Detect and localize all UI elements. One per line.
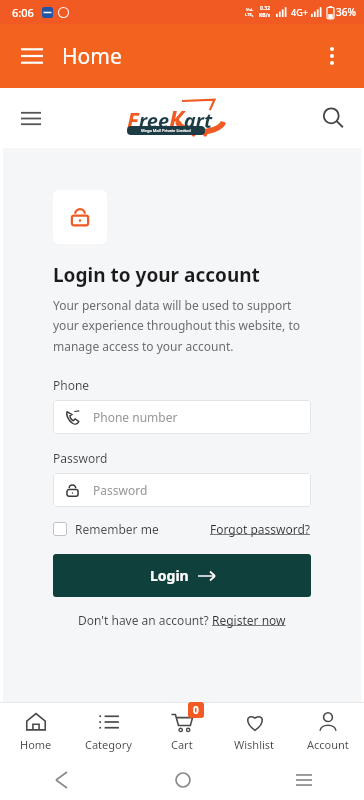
staticText: KB/s [259, 12, 271, 19]
staticText: Cart [171, 737, 193, 752]
staticText: Forgot password? [210, 521, 311, 537]
staticText: 0.32 [260, 5, 270, 12]
staticText: Register now [212, 612, 286, 628]
button[interactable]: Recent apps [287, 763, 321, 797]
staticText: Login to your account [53, 262, 260, 288]
button[interactable]: Home [166, 763, 200, 797]
button[interactable]: Search [316, 101, 350, 135]
button[interactable]: 0 [145, 703, 218, 760]
staticText: Home [62, 42, 122, 71]
staticText: Remember me [75, 521, 159, 537]
staticText: Wishlist [234, 737, 275, 752]
button[interactable]: Wishlist [218, 703, 291, 760]
button[interactable]: Password [53, 473, 311, 507]
button[interactable]: Login [53, 554, 311, 597]
staticText: Mega Mall Private Limited [141, 128, 191, 133]
button[interactable]: Account [291, 703, 364, 760]
button[interactable]: Register now [212, 612, 286, 628]
staticText: Phone number [93, 409, 178, 425]
staticText: Login [150, 566, 189, 585]
button[interactable]: More options [314, 38, 350, 74]
staticText: LTE₂ [245, 12, 254, 17]
staticText: 0 [193, 703, 199, 717]
staticText: Don't have an account? [78, 612, 212, 628]
staticText: Password [93, 482, 148, 498]
staticText: Category [85, 737, 132, 752]
button[interactable]: Forgot password? [210, 521, 311, 537]
staticText: 6:06 [12, 5, 34, 20]
button[interactable]: Home [0, 703, 72, 760]
button[interactable]: Back [44, 763, 78, 797]
staticText: FreeKart [127, 102, 213, 135]
button[interactable]: Menu [14, 101, 48, 135]
button[interactable]: Remember me [53, 521, 159, 537]
button[interactable]: Open navigation menu [14, 38, 50, 74]
staticText: Account [307, 737, 349, 752]
staticText: Phone [53, 377, 90, 393]
staticText: Home [20, 737, 52, 752]
staticText: Your personal data will be used to suppo… [53, 297, 311, 355]
button[interactable]: Phone number [53, 400, 311, 434]
staticText: 36% [336, 5, 356, 19]
staticText: Password [53, 450, 108, 466]
staticText: VoL [246, 7, 254, 12]
button[interactable]: Category [72, 703, 145, 760]
staticText: 4G+ [291, 6, 308, 18]
